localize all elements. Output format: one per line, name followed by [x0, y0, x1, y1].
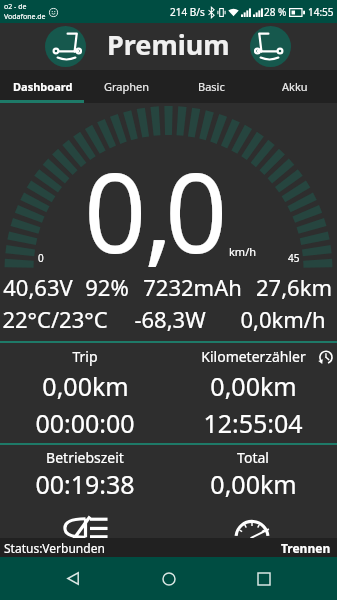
staticText: 0,00km: [42, 369, 129, 403]
staticText: 12:55:04: [203, 406, 303, 440]
staticText: Betriebszeit: [46, 448, 124, 467]
button[interactable]: Dashboard: [0, 70, 85, 103]
button[interactable]: Back: [51, 557, 95, 600]
staticText: 0: [84, 136, 147, 284]
button[interactable]: Cruise control: [205, 505, 299, 538]
staticText: Kilometerzähler: [201, 347, 306, 366]
staticText: 00:19:38: [35, 467, 135, 501]
staticText: 45: [288, 251, 300, 265]
staticText: 40,63V: [3, 272, 73, 302]
staticText: 22°C/23°C: [2, 304, 108, 334]
button[interactable]: Akku: [253, 70, 337, 103]
button[interactable]: Trennen: [275, 538, 337, 557]
staticText: Total: [237, 448, 269, 467]
staticText: Premium: [107, 26, 230, 63]
button[interactable]: Scooter profile 1: [45, 26, 86, 67]
staticText: 0,0km/h: [240, 304, 326, 334]
staticText: -68,3W: [134, 304, 206, 334]
staticText: 0,00km: [210, 467, 297, 501]
button[interactable]: Recents: [242, 557, 286, 600]
staticText: 0,00km: [210, 369, 297, 403]
staticText: km/h: [229, 244, 257, 259]
staticText: Akku: [282, 79, 308, 94]
staticText: o2 - de: [4, 2, 27, 12]
staticText: Trennen: [281, 540, 331, 555]
button[interactable]: History: [314, 346, 336, 368]
staticText: Basic: [198, 79, 225, 94]
button[interactable]: Basic: [169, 70, 253, 103]
button[interactable]: Home: [147, 557, 191, 600]
staticText: 14:55: [308, 5, 334, 19]
staticText: 0: [165, 136, 228, 284]
staticText: Trip: [72, 347, 98, 366]
staticText: 7232mAh: [143, 272, 242, 302]
staticText: 28 %: [264, 5, 287, 19]
staticText: Dashboard: [13, 79, 73, 94]
staticText: 00:00:00: [35, 406, 135, 440]
staticText: 214 B/s: [170, 5, 205, 19]
staticText: Status:Verbunden: [4, 540, 105, 556]
staticText: 0: [38, 251, 44, 265]
staticText: Graphen: [104, 79, 150, 94]
staticText: ,: [144, 136, 174, 284]
button[interactable]: Headlight off: [38, 505, 132, 538]
button[interactable]: Scooter profile 2: [250, 26, 291, 67]
staticText: 92%: [85, 272, 129, 302]
staticText: 27,6km: [256, 272, 332, 302]
staticText: Vodafone.de: [4, 12, 46, 22]
button[interactable]: Graphen: [85, 70, 169, 103]
